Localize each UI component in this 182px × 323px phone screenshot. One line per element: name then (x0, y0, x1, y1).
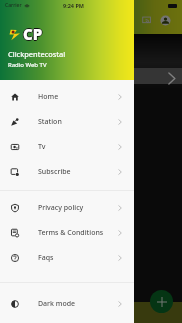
staticText: Radio Web TV (8, 61, 47, 69)
staticText: 9:24 PM (63, 2, 85, 9)
staticText: Carrier (5, 2, 22, 9)
button[interactable]: Add (150, 290, 173, 313)
button[interactable]: Subscribe (0, 159, 134, 184)
staticText: Tv (38, 142, 46, 152)
staticText: Dark mode (38, 299, 76, 309)
button[interactable]: Tv (0, 134, 134, 159)
staticText: CP (23, 23, 43, 43)
staticText: CP (23, 24, 43, 44)
staticText: CP (24, 24, 44, 44)
button[interactable]: Terms & Conditions (0, 220, 134, 245)
button[interactable]: Privacy policy (0, 195, 134, 220)
staticText: CP (22, 24, 42, 44)
staticText: Station (38, 117, 62, 127)
staticText: CP (23, 25, 43, 45)
staticText: Clickpentecostal (8, 49, 66, 59)
staticText: Subscribe (38, 167, 71, 177)
button[interactable]: Dark mode (0, 291, 134, 316)
staticText: Home (38, 92, 59, 102)
button[interactable]: Account (160, 15, 171, 26)
button[interactable]: Cast (142, 16, 151, 25)
button[interactable]: Station (0, 109, 134, 134)
button[interactable]: Home (0, 84, 134, 109)
staticText: Privacy policy (38, 203, 84, 213)
button[interactable]: Faqs (0, 245, 134, 270)
button[interactable]: Next (164, 71, 178, 85)
staticText: Terms & Conditions (38, 228, 104, 238)
staticText: Faqs (38, 253, 54, 263)
